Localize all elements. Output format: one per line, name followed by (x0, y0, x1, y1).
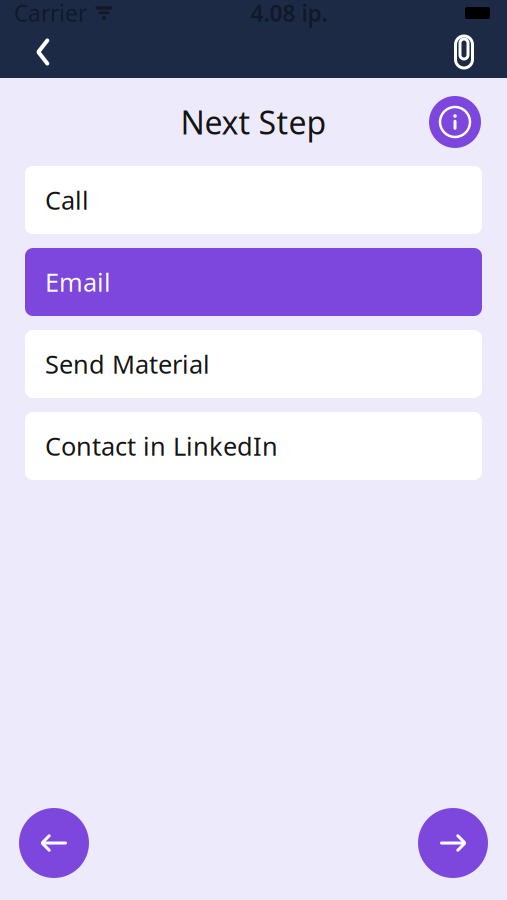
button[interactable]: Previous (19, 808, 89, 878)
staticText: Next Step (180, 101, 326, 143)
button[interactable]: Back (20, 29, 66, 75)
button[interactable]: Next (418, 808, 488, 878)
button[interactable]: Send Material (25, 330, 482, 398)
staticText: Call (45, 183, 89, 217)
staticText: Carrier (14, 0, 87, 28)
button[interactable]: Information (429, 96, 481, 148)
staticText: Email (45, 265, 111, 299)
button[interactable]: Call (25, 166, 482, 234)
staticText: Send Material (45, 347, 210, 381)
staticText: 4.08 ip. (250, 0, 327, 28)
staticText: Contact in LinkedIn (45, 429, 278, 463)
button[interactable]: Attachments (441, 29, 487, 75)
button[interactable]: Contact in LinkedIn (25, 412, 482, 480)
button[interactable]: Email (25, 248, 482, 316)
